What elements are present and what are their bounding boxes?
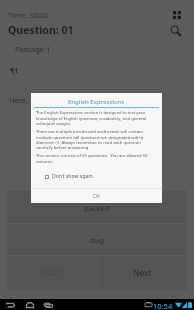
staticText: Question: 01	[8, 23, 74, 37]
button[interactable]: OK	[31, 189, 162, 203]
button[interactable]: packed	[7, 190, 187, 223]
staticText: Time: 50:00	[8, 10, 49, 20]
button[interactable]: Home	[23, 299, 36, 310]
staticText: Next	[133, 267, 152, 279]
staticText: Passage 1	[15, 44, 51, 54]
staticText: OK	[93, 193, 101, 200]
button[interactable]: Next	[98, 256, 187, 290]
staticText: English Expressions	[68, 98, 125, 106]
button[interactable]: Recent apps	[42, 299, 55, 310]
staticText: 10:54	[153, 301, 173, 310]
staticText: There are multiple articles and each art…	[36, 129, 157, 150]
button[interactable]: Apps grid	[168, 6, 186, 24]
staticText: The English Expressions section is desig…	[36, 110, 157, 126]
staticText: Don't show again.	[52, 173, 94, 180]
staticText: Here,	[9, 95, 28, 105]
staticText: dug	[90, 235, 104, 245]
button[interactable]: Don't show again.	[45, 173, 94, 180]
staticText: This section consists of 65 questions. Y…	[36, 153, 157, 164]
button[interactable]: Back	[4, 299, 17, 310]
staticText: packed	[84, 203, 110, 213]
staticText: ¶1	[10, 66, 18, 75]
button[interactable]: Search	[167, 22, 186, 41]
